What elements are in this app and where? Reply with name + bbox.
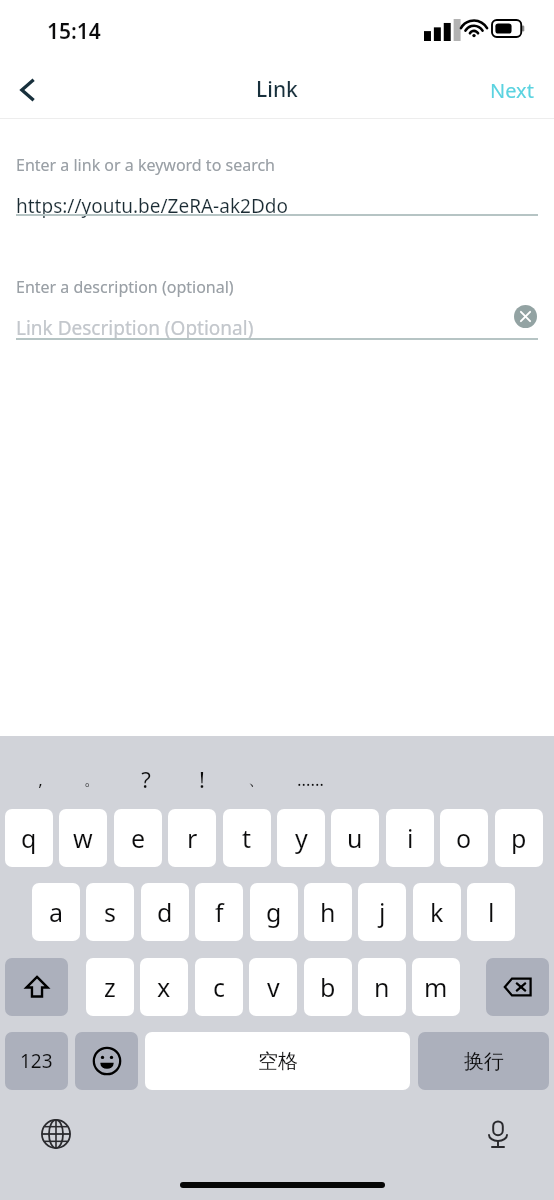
button[interactable]: j <box>358 883 406 941</box>
staticText: …… <box>297 768 324 791</box>
button[interactable]: 、 <box>234 760 278 798</box>
button[interactable]: ? <box>124 760 168 798</box>
button[interactable]: f <box>195 883 243 941</box>
button[interactable]: Dictation <box>472 1108 524 1160</box>
button[interactable]: s <box>86 883 134 941</box>
staticText: Link <box>256 75 298 104</box>
button[interactable]: z <box>86 958 134 1016</box>
button[interactable]: d <box>141 883 189 941</box>
staticText: ? <box>141 764 151 794</box>
staticText: c <box>213 970 226 1004</box>
button[interactable]: u <box>331 809 379 867</box>
staticText: 15:14 <box>47 17 101 46</box>
button[interactable]: k <box>413 883 461 941</box>
button[interactable]: b <box>304 958 352 1016</box>
button[interactable]: t <box>223 809 271 867</box>
staticText: i <box>407 821 414 855</box>
button[interactable]: q <box>5 809 53 867</box>
staticText: z <box>104 970 116 1004</box>
staticText: s <box>104 895 116 929</box>
button[interactable]: r <box>168 809 216 867</box>
staticText: q <box>21 821 37 855</box>
button[interactable]: o <box>440 809 488 867</box>
button[interactable]: 换行 <box>418 1032 549 1090</box>
staticText: v <box>267 970 280 1004</box>
button[interactable]: Next <box>480 69 544 112</box>
button[interactable]: Change keyboard <box>30 1108 82 1160</box>
staticText: l <box>488 895 495 929</box>
staticText: t <box>242 821 252 855</box>
staticText: m <box>424 970 448 1004</box>
staticText: h <box>320 895 336 929</box>
button[interactable]: c <box>195 958 243 1016</box>
staticText: https://youtu.be/ZeRA-ak2Ddo <box>16 193 288 219</box>
button[interactable]: v <box>249 958 297 1016</box>
staticText: a <box>49 895 64 929</box>
button[interactable]: l <box>467 883 515 941</box>
staticText: d <box>157 895 173 929</box>
staticText: 123 <box>20 1048 53 1074</box>
staticText: n <box>374 970 390 1004</box>
button[interactable]: x <box>140 958 188 1016</box>
button[interactable]: Backspace <box>486 958 549 1016</box>
button[interactable]: Back <box>2 64 54 116</box>
button[interactable]: g <box>250 883 298 941</box>
staticText: g <box>266 895 282 929</box>
staticText: 、 <box>248 769 265 790</box>
staticText: 。 <box>84 769 101 790</box>
staticText: w <box>73 821 93 855</box>
button[interactable]: , <box>18 760 62 798</box>
button[interactable]: e <box>114 809 162 867</box>
staticText: b <box>320 970 336 1004</box>
staticText: , <box>38 768 43 791</box>
button[interactable]: ! <box>180 760 224 798</box>
staticText: Enter a link or a keyword to search <box>16 154 276 176</box>
button[interactable]: m <box>412 958 460 1016</box>
staticText: p <box>511 821 527 855</box>
button[interactable]: w <box>59 809 107 867</box>
staticText: Link Description (Optional) <box>16 315 254 341</box>
staticText: y <box>295 821 308 855</box>
staticText: 换行 <box>464 1049 504 1074</box>
button[interactable]: y <box>277 809 325 867</box>
staticText: Enter a description (optional) <box>16 276 234 298</box>
button[interactable]: …… <box>288 760 332 798</box>
staticText: f <box>215 895 224 929</box>
button[interactable]: 。 <box>70 760 114 798</box>
button[interactable]: Numbers <box>5 1032 68 1090</box>
button[interactable]: Link Description (Optional) <box>16 309 538 347</box>
staticText: k <box>430 895 444 929</box>
staticText: u <box>347 821 363 855</box>
button[interactable]: p <box>495 809 543 867</box>
staticText: 空格 <box>258 1049 298 1074</box>
staticText: Next <box>490 77 534 104</box>
button[interactable]: https://youtu.be/ZeRA-ak2Ddo <box>16 187 538 225</box>
staticText: j <box>379 895 386 929</box>
staticText: o <box>456 821 472 855</box>
staticText: r <box>187 821 198 855</box>
staticText: e <box>131 821 146 855</box>
staticText: x <box>157 970 171 1004</box>
button[interactable]: a <box>32 883 80 941</box>
staticText: ! <box>199 764 205 794</box>
button[interactable]: h <box>304 883 352 941</box>
button[interactable]: Shift <box>5 958 68 1016</box>
button[interactable]: n <box>358 958 406 1016</box>
button[interactable]: 空格 <box>145 1032 410 1090</box>
button[interactable]: i <box>386 809 434 867</box>
button[interactable]: Emoji <box>75 1032 138 1090</box>
button[interactable]: Clear text <box>508 299 542 333</box>
